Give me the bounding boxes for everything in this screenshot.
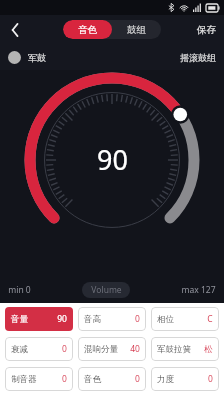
- staticText: 松: [204, 344, 213, 355]
- button[interactable]: Back: [0, 15, 30, 44]
- staticText: 力度: [157, 374, 174, 385]
- staticText: 军鼓: [28, 52, 46, 63]
- staticText: max 127: [181, 284, 216, 296]
- button[interactable]: 军鼓: [0, 44, 224, 70]
- button[interactable]: 保存: [194, 21, 219, 39]
- staticText: 鼓组: [127, 24, 146, 36]
- staticText: 90: [97, 141, 128, 178]
- staticText: 0: [208, 373, 213, 385]
- button[interactable]: 鼓组: [112, 20, 161, 39]
- staticText: 音色: [78, 24, 97, 36]
- staticText: 制音器: [11, 374, 37, 385]
- staticText: 衰减: [11, 344, 28, 355]
- button[interactable]: 相位: [151, 307, 219, 331]
- staticText: 音量: [11, 314, 28, 325]
- staticText: 混响分量: [84, 344, 118, 355]
- staticText: 0: [62, 343, 67, 355]
- staticText: 摇滚鼓组: [180, 52, 216, 63]
- staticText: C: [207, 313, 213, 325]
- staticText: min 0: [8, 284, 31, 296]
- button[interactable]: 衰减: [5, 337, 73, 361]
- staticText: 音高: [84, 314, 101, 325]
- button[interactable]: 音量: [5, 307, 73, 331]
- button[interactable]: Volume: [82, 282, 130, 298]
- staticText: 0: [62, 373, 67, 385]
- staticText: 0: [135, 313, 140, 325]
- staticText: 0: [135, 373, 140, 385]
- button[interactable]: 制音器: [5, 367, 73, 391]
- staticText: 保存: [197, 24, 216, 36]
- staticText: 音色: [84, 374, 101, 385]
- staticText: 相位: [157, 314, 174, 325]
- button[interactable]: 音色: [78, 367, 146, 391]
- staticText: Volume: [91, 284, 122, 296]
- button[interactable]: 混响分量: [78, 337, 146, 361]
- staticText: 90: [57, 313, 67, 325]
- button[interactable]: 军鼓拉簧: [151, 337, 219, 361]
- button[interactable]: 音色: [63, 20, 112, 39]
- staticText: 军鼓拉簧: [157, 344, 191, 355]
- staticText: 40: [130, 343, 140, 355]
- button[interactable]: 力度: [151, 367, 219, 391]
- button[interactable]: 音高: [78, 307, 146, 331]
